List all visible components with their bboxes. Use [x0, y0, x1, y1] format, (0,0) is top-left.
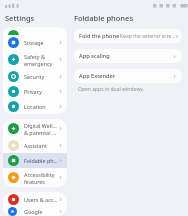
button[interactable]: Storage — [3, 35, 67, 50]
staticText: Safety & — [24, 53, 45, 60]
staticText: Open apps in dual windows. — [78, 86, 145, 93]
staticText: Privacy — [24, 88, 42, 95]
staticText: App scaling — [79, 52, 110, 60]
staticText: Digital Wellbeing — [24, 122, 58, 129]
staticText: Settings — [5, 13, 35, 23]
button[interactable]: Assistant — [3, 138, 67, 153]
button[interactable]: Digital Wellbeing — [3, 119, 67, 138]
button[interactable]: App scaling — [74, 49, 182, 63]
staticText: Storage — [24, 39, 44, 46]
button[interactable]: Location — [3, 99, 67, 114]
button[interactable]: Users & accounts — [3, 192, 67, 207]
staticText: Assistant — [24, 142, 47, 149]
button[interactable]: Foldable phones — [3, 153, 67, 168]
button[interactable]: Fold the phone — [74, 29, 182, 43]
staticText: features — [24, 178, 45, 185]
staticText: Keep the exterior screen on — [120, 33, 177, 40]
staticText: emergency — [24, 60, 53, 67]
staticText: Google — [24, 208, 43, 215]
button[interactable]: Accessibility — [3, 168, 67, 187]
staticText: Accessibility — [24, 171, 55, 178]
staticText: App Extender — [79, 72, 116, 80]
button[interactable]: App Extender — [74, 69, 182, 83]
button[interactable]: Privacy — [3, 84, 67, 99]
button[interactable]: Google — [3, 207, 67, 216]
staticText: Fold the phone — [79, 32, 120, 40]
button[interactable] — [3, 27, 67, 35]
staticText: Location — [24, 103, 46, 110]
staticText: Foldable phones — [24, 157, 58, 164]
staticText: Foldable phones — [74, 13, 134, 23]
button[interactable]: Safety & — [3, 50, 67, 69]
staticText: Users & accounts — [24, 196, 58, 203]
staticText: Security — [24, 73, 45, 80]
button[interactable]: Security — [3, 69, 67, 84]
staticText: & parental controls — [24, 129, 58, 136]
